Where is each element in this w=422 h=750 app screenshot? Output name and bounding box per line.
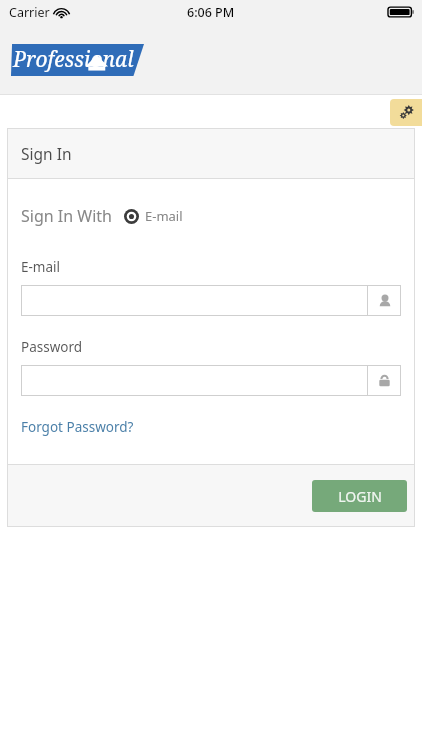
staticText: Professional (13, 45, 134, 74)
button[interactable]: Settings (390, 99, 422, 126)
staticText: Sign In With (21, 205, 112, 227)
button[interactable]: Forgot Password? (21, 418, 134, 436)
button[interactable]: LOGIN (312, 480, 407, 512)
button[interactable] (21, 365, 401, 396)
button[interactable] (21, 285, 401, 316)
staticText: E-mail (21, 258, 61, 276)
staticText: LOGIN (338, 487, 382, 506)
staticText: E-mail (145, 207, 183, 225)
staticText: 6:06 PM (187, 4, 235, 21)
button[interactable]: Sign In With (21, 205, 183, 227)
staticText: Sign In (21, 143, 72, 164)
staticText: Password (21, 338, 83, 356)
staticText: Carrier (9, 4, 50, 21)
